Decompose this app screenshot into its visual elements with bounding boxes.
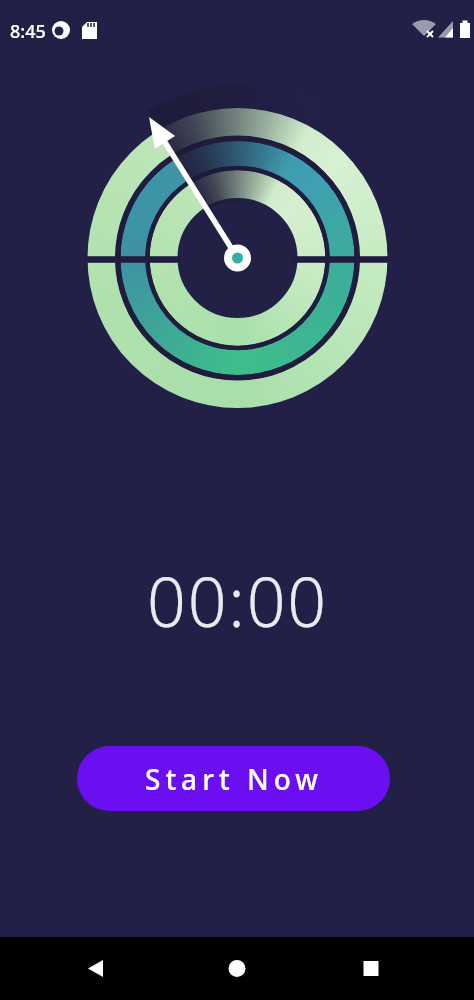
staticText: Start Now	[145, 760, 323, 798]
staticText: 8:45	[10, 19, 46, 44]
button[interactable]	[347, 944, 395, 992]
button[interactable]	[71, 944, 119, 992]
staticText: 00:00	[147, 554, 328, 647]
button[interactable]: Start Now	[77, 746, 390, 811]
button[interactable]	[213, 944, 261, 992]
